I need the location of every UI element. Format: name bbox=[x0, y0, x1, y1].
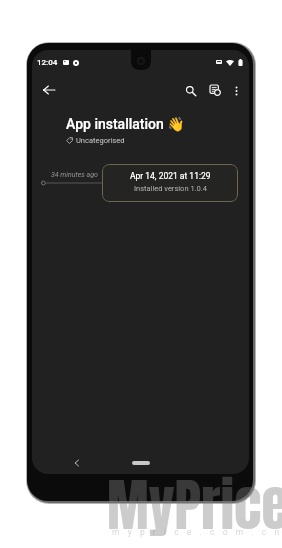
button[interactable]: Saved notes bbox=[204, 79, 227, 102]
staticText: myprice.com.cn bbox=[112, 527, 282, 537]
button[interactable]: Back bbox=[68, 454, 86, 472]
button[interactable]: Apr 14, 2021 at 11:29 bbox=[102, 164, 238, 202]
button[interactable]: Search bbox=[179, 79, 202, 102]
button[interactable]: Back bbox=[36, 77, 62, 103]
staticText: 34 minutes ago bbox=[51, 171, 98, 179]
button[interactable]: More options bbox=[225, 79, 248, 102]
staticText: Uncategorised bbox=[76, 136, 125, 145]
button[interactable]: Home bbox=[132, 461, 150, 465]
staticText: MyPrice bbox=[107, 463, 282, 547]
staticText: Installed version 1.0.4 bbox=[134, 184, 207, 193]
staticText: 12:04 bbox=[37, 58, 58, 67]
staticText: App installation 👋 bbox=[66, 116, 185, 132]
staticText: Apr 14, 2021 at 11:29 bbox=[130, 171, 211, 181]
